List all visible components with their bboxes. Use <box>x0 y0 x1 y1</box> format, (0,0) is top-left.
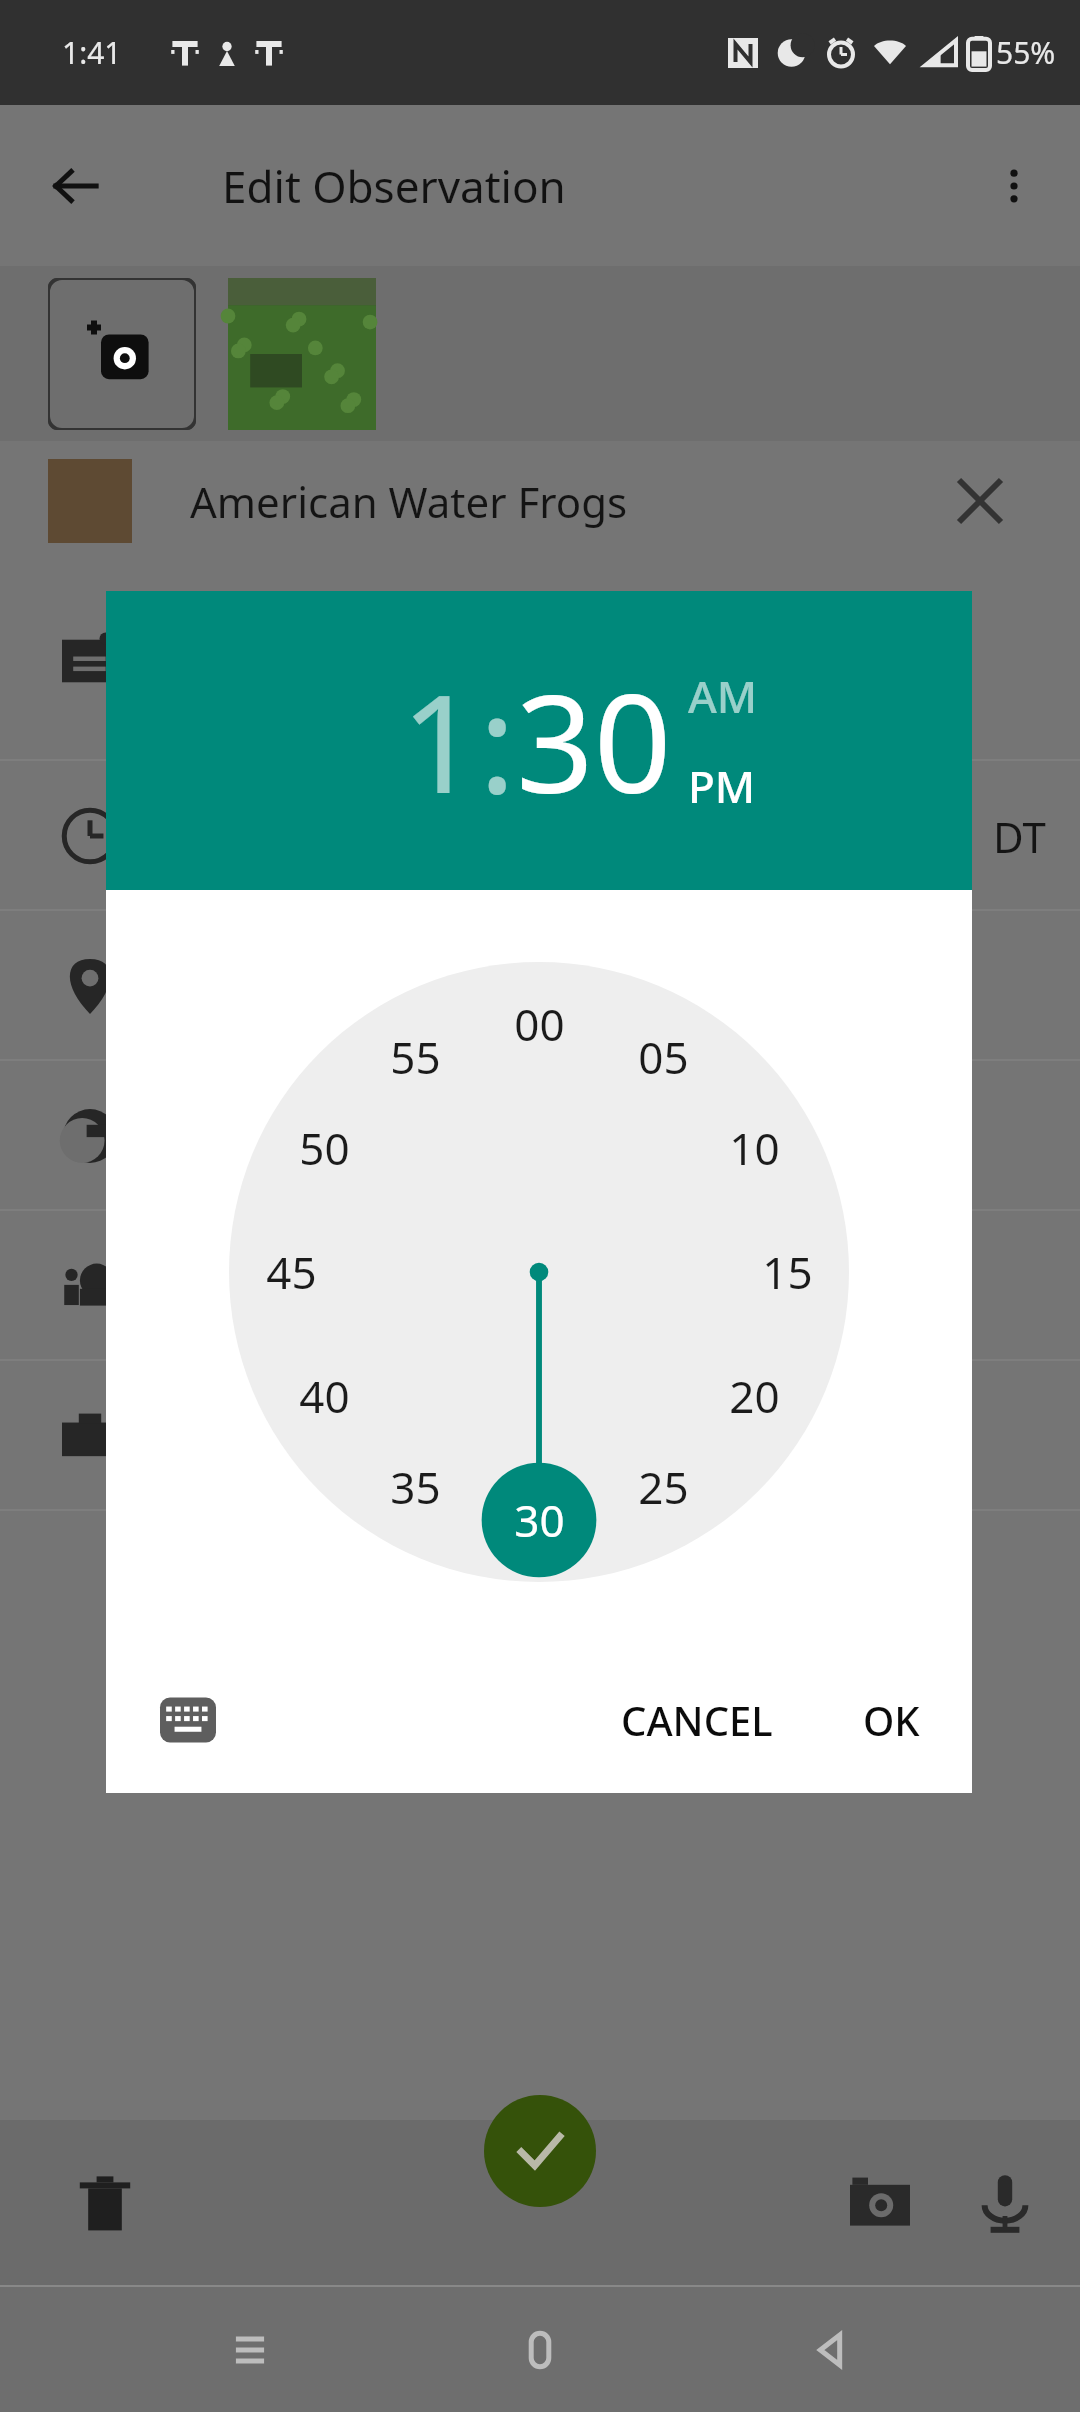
staticText: 30 <box>514 1490 565 1550</box>
staticText: DT <box>993 808 1046 865</box>
button[interactable]: Back <box>40 150 112 222</box>
staticText: American Water Frogs <box>190 473 628 530</box>
button[interactable] <box>0 1211 1080 1361</box>
button[interactable]: 00 <box>229 962 849 1582</box>
button[interactable]: Record audio <box>970 2169 1040 2239</box>
staticText: 00 <box>514 994 565 1054</box>
button[interactable] <box>0 1061 1080 1211</box>
button[interactable]: 1 <box>401 648 479 833</box>
button[interactable] <box>228 278 376 430</box>
button[interactable]: 30 <box>516 648 672 833</box>
button[interactable]: OK <box>841 1677 942 1763</box>
staticText: 45 <box>266 1242 317 1302</box>
button[interactable]: Save observation <box>484 2095 596 2207</box>
staticText: 10 <box>729 1118 780 1178</box>
button[interactable]: Back <box>790 2310 870 2390</box>
staticText: 40 <box>299 1366 350 1426</box>
button[interactable]: PM <box>688 756 756 816</box>
staticText: 35 <box>390 1457 441 1517</box>
button[interactable] <box>0 1361 1080 1511</box>
staticText: CANCEL <box>621 1693 773 1747</box>
button[interactable] <box>48 278 196 430</box>
staticText: 50 <box>299 1118 350 1178</box>
staticText: 20 <box>729 1366 780 1426</box>
button[interactable]: Clear species <box>950 471 1010 531</box>
button[interactable] <box>0 561 1080 761</box>
button[interactable] <box>0 911 1080 1061</box>
staticText: 55 <box>390 1027 441 1087</box>
staticText: 05 <box>638 1027 689 1087</box>
button[interactable]: Camera <box>845 2169 915 2239</box>
button[interactable]: CANCEL <box>599 1677 795 1763</box>
button[interactable]: Recents <box>210 2310 290 2390</box>
button[interactable]: Home <box>500 2310 580 2390</box>
staticText: 1:41 <box>62 32 122 73</box>
button[interactable]: Delete <box>70 2169 140 2239</box>
button[interactable]: AM <box>688 666 758 726</box>
staticText: 15 <box>762 1242 813 1302</box>
staticText: OK <box>863 1693 920 1747</box>
staticText: 25 <box>638 1457 689 1517</box>
button[interactable]: Switch to keyboard input <box>150 1682 226 1758</box>
button[interactable]: More options <box>978 150 1050 222</box>
staticText: : <box>479 648 516 833</box>
staticText: Edit Observation <box>222 156 566 216</box>
button[interactable]: American Water Frogs <box>0 441 1080 561</box>
button[interactable]: DT <box>0 761 1080 911</box>
staticText: 55% <box>996 32 1056 73</box>
